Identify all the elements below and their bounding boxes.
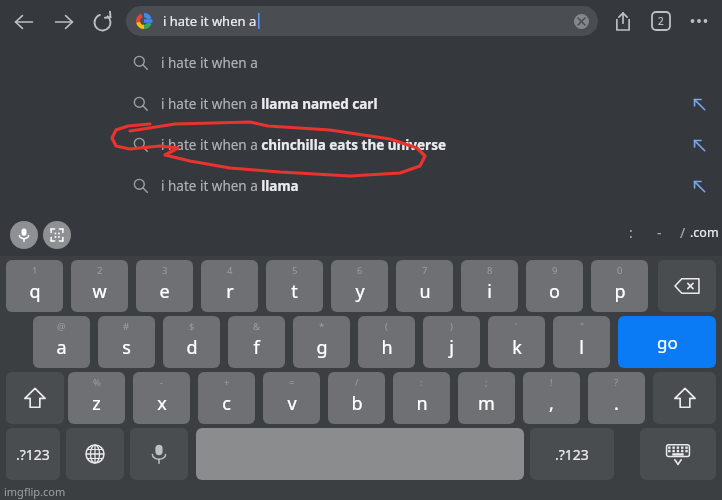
button[interactable]: .?123 [6, 428, 60, 480]
staticText: i hate it when a [161, 54, 258, 72]
button[interactable]: Space [196, 428, 524, 480]
button[interactable]: Share [608, 6, 638, 36]
button[interactable]: Voice search [10, 221, 38, 249]
button[interactable]: # [98, 316, 155, 368]
button[interactable]: ; [458, 372, 515, 424]
button[interactable]: / [672, 221, 694, 243]
button[interactable]: ) [423, 316, 480, 368]
button[interactable]: & [228, 316, 285, 368]
button[interactable]: Back [8, 6, 40, 38]
button[interactable]: Use this suggestion [684, 171, 714, 201]
button[interactable]: i hate it when a chinchilla eats the uni… [0, 124, 722, 165]
staticText: 0 [617, 264, 623, 277]
button[interactable]: 2 [71, 260, 128, 312]
button[interactable]: i hate it when a llama [0, 165, 722, 206]
button[interactable]: 1 [6, 260, 63, 312]
staticText: 7 [422, 264, 428, 277]
button[interactable]: ' [488, 316, 545, 368]
button[interactable]: : [620, 221, 642, 243]
button[interactable]: Shift [6, 372, 64, 424]
staticText: ( [385, 320, 388, 333]
staticText: r [226, 279, 234, 304]
staticText: ? [614, 376, 619, 389]
staticText: 4 [227, 264, 233, 277]
staticText: / [355, 376, 359, 389]
button[interactable]: @ [33, 316, 90, 368]
button[interactable]: Use this suggestion [684, 89, 714, 119]
staticText: / [680, 223, 686, 242]
button[interactable]: - [133, 372, 190, 424]
button[interactable]: Tabs, 2 open [646, 6, 676, 36]
button[interactable]: Shift [653, 372, 716, 424]
button[interactable]: % [68, 372, 125, 424]
button[interactable]: go [618, 316, 716, 368]
staticText: a [56, 335, 67, 360]
button[interactable]: Scan QR code [43, 221, 71, 249]
staticText: j [449, 335, 454, 360]
button[interactable]: Backspace [658, 260, 716, 312]
staticText: i hate it when a chinchilla eats the uni… [161, 136, 446, 154]
button[interactable]: Voice input [130, 428, 188, 480]
staticText: w [92, 279, 107, 304]
button[interactable]: ! [523, 372, 580, 424]
staticText: 3 [162, 264, 168, 277]
staticText: ; [485, 376, 488, 389]
staticText: .?123 [16, 445, 50, 464]
button[interactable]: ( [358, 316, 415, 368]
staticText: , [549, 391, 554, 416]
staticText: & [253, 320, 260, 333]
button[interactable]: i hate it when a [126, 6, 598, 36]
button[interactable]: 6 [331, 260, 388, 312]
button[interactable]: Change language [66, 428, 124, 480]
staticText: 6 [357, 264, 363, 277]
button[interactable]: 7 [396, 260, 453, 312]
staticText: m [478, 391, 495, 416]
button[interactable]: $ [163, 316, 220, 368]
button[interactable]: i hate it when a [0, 42, 722, 83]
staticText: .?123 [555, 445, 589, 464]
staticText: - [160, 376, 164, 389]
button[interactable]: Use this suggestion [684, 130, 714, 160]
button[interactable]: Clear text [568, 8, 594, 34]
staticText: l [579, 335, 584, 360]
button[interactable]: 5 [266, 260, 323, 312]
staticText: i hate it when a llama named carl [161, 95, 378, 113]
button[interactable]: 0 [591, 260, 648, 312]
staticText: k [512, 335, 522, 360]
staticText: 2 [658, 14, 664, 28]
staticText: = [289, 376, 295, 389]
staticText: h [381, 335, 393, 360]
staticText: z [92, 391, 101, 416]
button[interactable]: + [198, 372, 255, 424]
button[interactable]: Reload [86, 6, 118, 38]
button[interactable]: " [553, 316, 610, 368]
staticText: 1 [32, 264, 38, 277]
staticText: * [319, 320, 325, 333]
button[interactable]: * [293, 316, 350, 368]
button[interactable]: ? [588, 372, 645, 424]
button[interactable]: : [393, 372, 450, 424]
button[interactable]: 4 [201, 260, 258, 312]
staticText: 8 [487, 264, 493, 277]
button[interactable]: Forward [48, 6, 80, 38]
button[interactable]: .?123 [530, 428, 614, 480]
staticText: 2 [97, 264, 103, 277]
staticText: b [351, 391, 363, 416]
button[interactable]: 8 [461, 260, 518, 312]
button[interactable]: 3 [136, 260, 193, 312]
staticText: $ [189, 320, 195, 333]
button[interactable]: = [263, 372, 320, 424]
staticText: ' [515, 320, 518, 333]
staticText: f [253, 335, 260, 360]
staticText: " [580, 320, 584, 333]
button[interactable]: - [648, 221, 670, 243]
button[interactable]: More options [684, 6, 714, 36]
staticText: u [419, 279, 431, 304]
staticText: q [29, 279, 41, 304]
button[interactable]: / [328, 372, 385, 424]
staticText: i hate it when a [163, 12, 257, 30]
button[interactable]: Hide keyboard [640, 428, 716, 480]
button[interactable]: i hate it when a llama named carl [0, 83, 722, 124]
button[interactable]: 9 [526, 260, 583, 312]
button[interactable]: .com [688, 221, 720, 243]
